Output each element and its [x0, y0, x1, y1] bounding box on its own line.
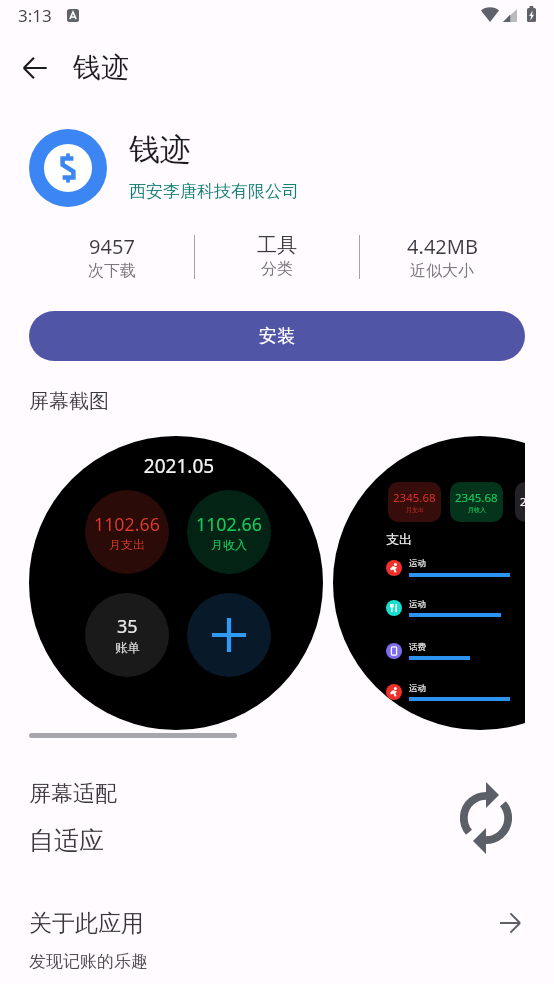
staticText: 4.42MB — [407, 233, 478, 260]
button[interactable]: 西安李唐科技有限公司 — [129, 181, 299, 202]
staticText: 运动 — [409, 683, 426, 694]
staticText: 次下载 — [88, 261, 136, 281]
staticText: 运动 — [409, 558, 426, 569]
staticText: 2345.68 — [393, 490, 436, 506]
staticText: 近似大小 — [410, 261, 474, 281]
staticText: 安装 — [259, 325, 295, 348]
staticText: 月收入 — [468, 506, 486, 514]
staticText: 话费 — [409, 642, 426, 653]
staticText: 9457 — [89, 233, 135, 260]
button[interactable]: Back — [11, 44, 59, 92]
button[interactable]: 关于此应用 — [0, 895, 554, 984]
staticText: 支出 — [386, 531, 412, 547]
staticText: 运动 — [409, 599, 426, 610]
staticText: 1102.66 — [94, 512, 160, 536]
staticText: 2021.05 — [32, 453, 323, 479]
staticText: 关于此应用 — [29, 909, 144, 938]
staticText: 自适应 — [29, 825, 104, 856]
button[interactable]: 屏幕适配 — [0, 762, 554, 866]
staticText: 西安李唐科技有限公司 — [129, 181, 299, 202]
staticText: 月支出 — [406, 506, 424, 514]
staticText: 35 — [117, 614, 138, 639]
button[interactable]: Screenshot 2 — [333, 436, 525, 730]
button[interactable]: Screen compatibility — [457, 780, 515, 856]
staticText: 2345.68 — [455, 490, 498, 506]
staticText: 月支出 — [109, 537, 145, 552]
staticText: 屏幕截图 — [29, 389, 109, 414]
staticText: 屏幕适配 — [29, 780, 117, 808]
staticText: 钱迹 — [73, 50, 129, 85]
staticText: 3:13 — [18, 4, 52, 27]
staticText: 分类 — [261, 259, 293, 279]
button[interactable]: 安装 — [29, 311, 525, 361]
staticText: 发现记账的乐趣 — [29, 951, 148, 972]
staticText: 2345.68 — [520, 494, 525, 510]
staticText: 工具 — [257, 233, 297, 258]
staticText: 账单 — [115, 640, 140, 656]
button[interactable]: Screenshot 1 — [29, 436, 323, 730]
staticText: 钱迹 — [129, 130, 191, 169]
staticText: 月收入 — [211, 537, 247, 552]
staticText: 1102.66 — [196, 512, 262, 536]
